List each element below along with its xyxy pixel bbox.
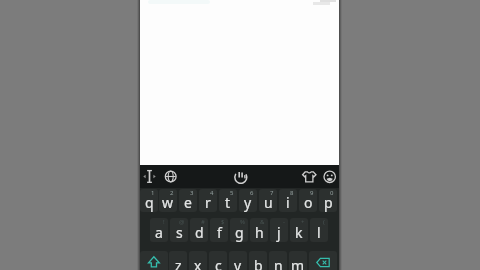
staticText: %: [240, 218, 245, 226]
button[interactable]: b: [249, 251, 267, 270]
staticText: !: [163, 218, 165, 226]
staticText: +: [301, 218, 305, 226]
button[interactable]: o: [299, 189, 317, 212]
button[interactable]: [299, 166, 319, 187]
staticText: s: [176, 223, 183, 242]
staticText: 8: [290, 189, 294, 197]
button[interactable]: [320, 166, 340, 187]
staticText: v: [234, 256, 242, 270]
button[interactable]: w: [159, 189, 177, 212]
button[interactable]: d: [190, 218, 208, 242]
staticText: 9: [310, 189, 314, 197]
staticText: 3: [190, 189, 194, 197]
staticText: h: [255, 223, 264, 242]
button[interactable]: x: [189, 251, 207, 270]
button[interactable]: h: [250, 218, 268, 242]
staticText: c: [215, 256, 222, 270]
staticText: d: [195, 223, 204, 242]
staticText: #: [201, 218, 205, 226]
staticText: e: [184, 193, 192, 212]
button[interactable]: s: [170, 218, 188, 242]
button[interactable]: [161, 166, 181, 187]
staticText: (: [323, 218, 325, 226]
button[interactable]: a: [150, 218, 168, 242]
button[interactable]: z: [169, 251, 187, 270]
button[interactable]: p: [319, 189, 337, 212]
button[interactable]: n: [269, 251, 287, 270]
staticText: u: [264, 193, 273, 212]
staticText: &: [260, 218, 265, 226]
staticText: x: [194, 256, 202, 270]
staticText: g: [235, 223, 244, 242]
button[interactable]: q: [140, 189, 158, 212]
staticText: p: [324, 193, 333, 212]
staticText: i: [286, 193, 290, 212]
staticText: a: [155, 223, 163, 242]
button[interactable]: k: [290, 218, 308, 242]
staticText: w: [162, 193, 174, 212]
staticText: n: [274, 256, 283, 270]
button[interactable]: r: [199, 189, 217, 212]
staticText: q: [145, 193, 154, 212]
staticText: 2: [170, 189, 174, 197]
staticText: $: [221, 218, 225, 226]
button[interactable]: f: [210, 218, 228, 242]
staticText: 6: [250, 189, 254, 197]
button[interactable]: y: [239, 189, 257, 212]
button[interactable]: [309, 251, 337, 270]
button[interactable]: [140, 166, 160, 187]
staticText: o: [304, 193, 313, 212]
staticText: m: [291, 256, 305, 270]
button[interactable]: e: [179, 189, 197, 212]
button[interactable]: [231, 166, 251, 187]
button[interactable]: j: [270, 218, 288, 242]
button[interactable]: l: [310, 218, 328, 242]
button[interactable]: i: [279, 189, 297, 212]
button[interactable]: m: [289, 251, 307, 270]
staticText: j: [277, 223, 281, 242]
button[interactable]: c: [209, 251, 227, 270]
staticText: @: [179, 218, 185, 226]
staticText: 1: [151, 189, 155, 197]
staticText: 0: [330, 189, 334, 197]
staticText: r: [205, 193, 211, 212]
button[interactable]: [140, 251, 168, 270]
button[interactable]: v: [229, 251, 247, 270]
staticText: b: [254, 256, 263, 270]
staticText: t: [225, 193, 231, 212]
button[interactable]: u: [259, 189, 277, 212]
staticText: 4: [210, 189, 214, 197]
staticText: z: [175, 256, 182, 270]
staticText: l: [317, 223, 321, 242]
staticText: k: [295, 223, 303, 242]
button[interactable]: g: [230, 218, 248, 242]
button[interactable]: t: [219, 189, 237, 212]
staticText: f: [217, 223, 222, 242]
staticText: 5: [230, 189, 234, 197]
staticText: 7: [270, 189, 274, 197]
staticText: -: [283, 218, 285, 226]
staticText: y: [244, 193, 252, 212]
